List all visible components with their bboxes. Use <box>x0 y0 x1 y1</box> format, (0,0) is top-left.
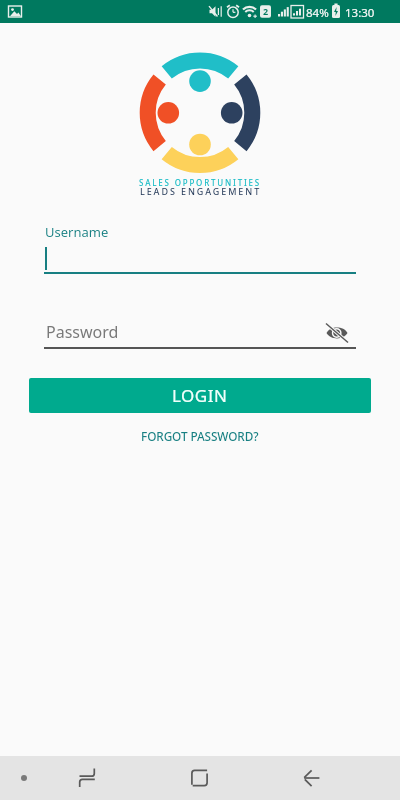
staticText: FORGOT PASSWORD? <box>141 428 259 444</box>
staticText: 84% <box>306 5 329 21</box>
button[interactable]: LOGIN <box>29 378 371 413</box>
staticText: 13:30 <box>345 5 375 21</box>
button[interactable]: Recents <box>48 756 124 800</box>
staticText: Password <box>46 321 119 343</box>
staticText: Username <box>45 223 109 241</box>
staticText: SALES OPPORTUNITIES <box>139 177 262 188</box>
button[interactable]: Home <box>124 756 237 800</box>
button[interactable]: Username <box>44 224 356 276</box>
staticText: LEADS ENGAGEMENT <box>140 185 262 197</box>
staticText: LOGIN <box>172 384 228 407</box>
button[interactable]: Back <box>237 756 349 800</box>
button[interactable]: Show password <box>322 322 352 344</box>
staticText: 2 <box>263 5 269 17</box>
button[interactable]: FORGOT PASSWORD? <box>135 423 265 449</box>
